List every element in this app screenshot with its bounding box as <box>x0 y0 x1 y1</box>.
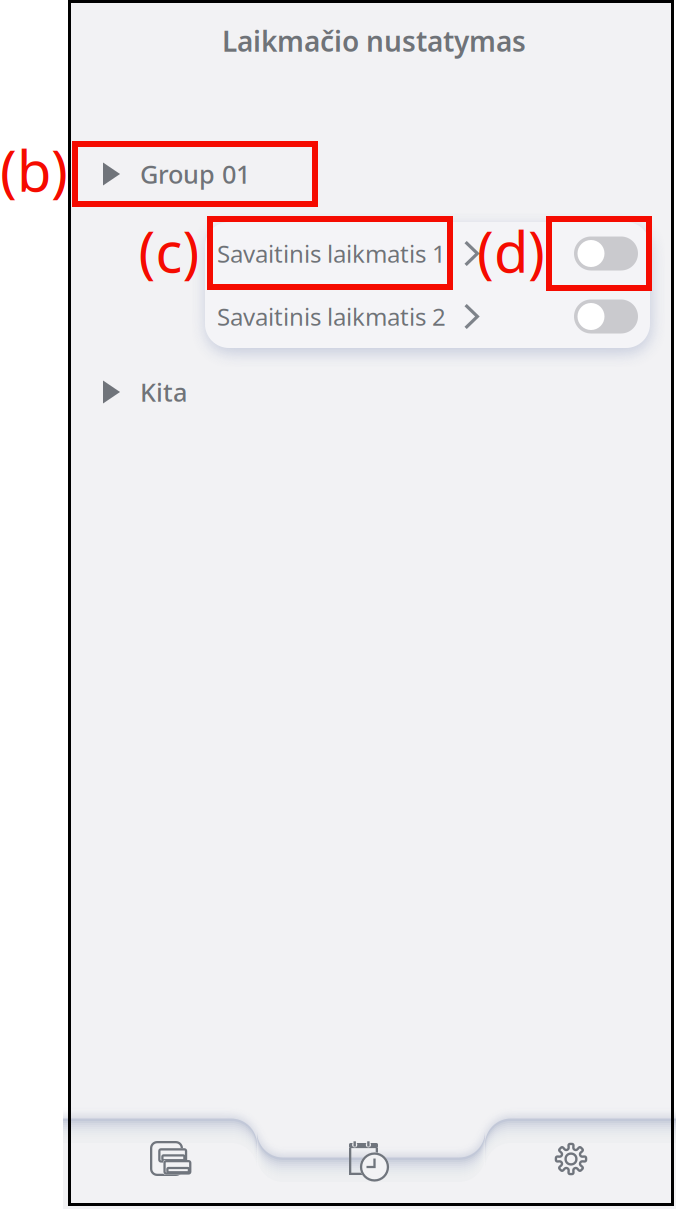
button[interactable]: Timer settings <box>271 1115 471 1203</box>
staticText: Kita <box>140 375 187 409</box>
button[interactable]: Group 01 <box>71 148 321 200</box>
staticText: (b) <box>0 133 68 207</box>
staticText: Laikmačio nustatymas <box>222 22 526 60</box>
button[interactable]: Devices <box>71 1115 271 1203</box>
staticText: (c) <box>138 214 199 288</box>
button[interactable]: Savaitinis laikmatis 1 <box>205 222 650 285</box>
button[interactable]: Kita <box>71 366 321 418</box>
staticText: Group 01 <box>140 157 250 191</box>
button[interactable]: Savaitinis laikmatis 2 <box>205 285 650 348</box>
staticText: (d) <box>477 214 545 288</box>
staticText: Savaitinis laikmatis 2 <box>217 301 446 332</box>
staticText: Savaitinis laikmatis 1 <box>217 238 446 269</box>
button[interactable]: Settings <box>471 1115 671 1203</box>
